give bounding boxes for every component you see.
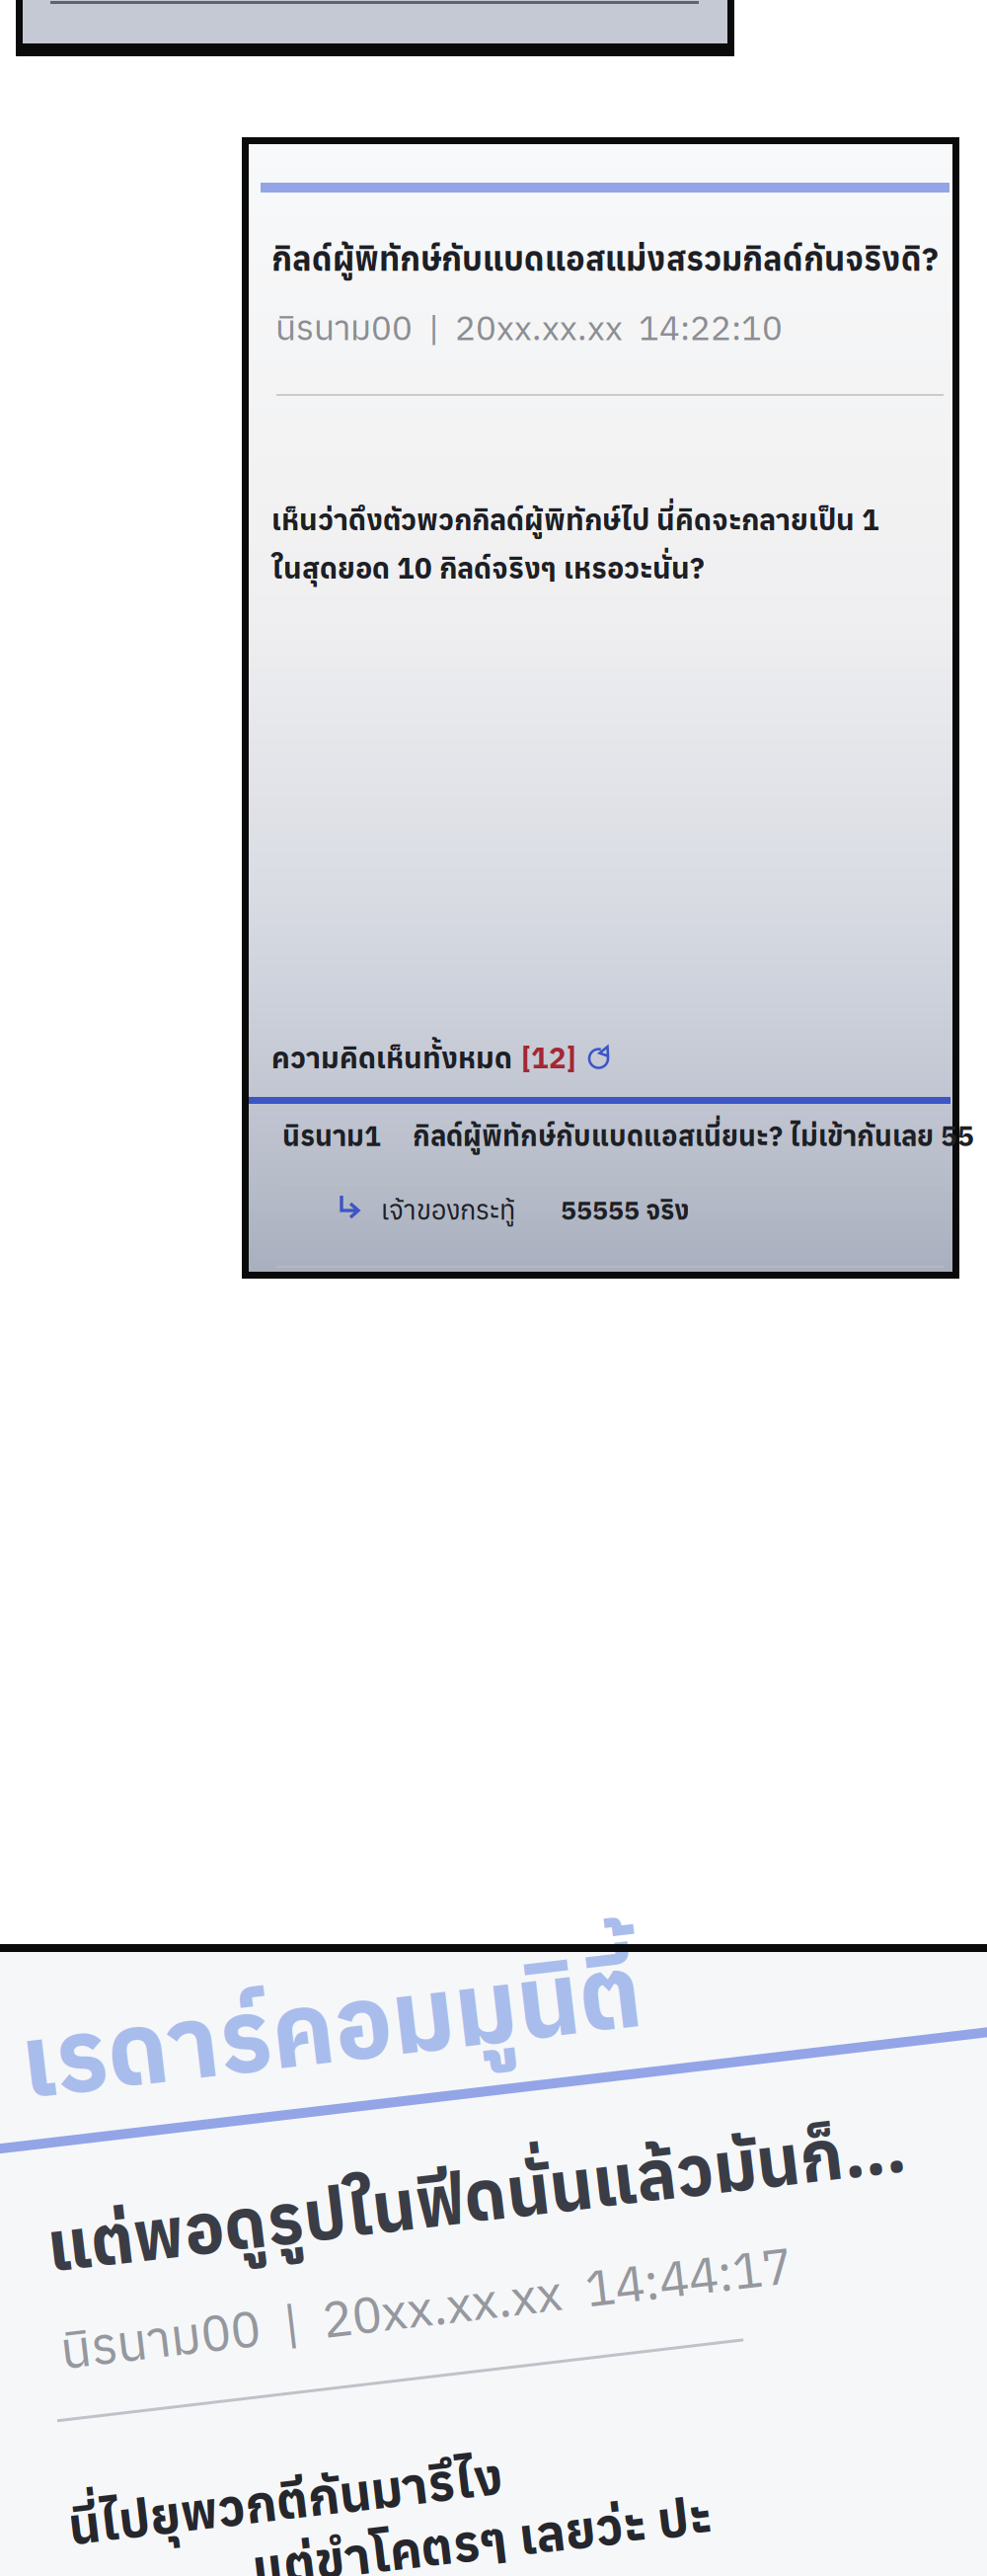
staticText: นี่ไปยุพวกตีกันมารึไง [5, 2498, 442, 2563]
staticText: กิลด์ผู้พิทักษ์กับแบดแอสเนี่ยนะ? ไม่เข้า… [413, 1118, 974, 1154]
staticText: ในสุดยอด 10 กิลด์จริงๆ เหรอวะนั่น? [271, 549, 705, 587]
staticText: นิรนาม00 | 20xx.xx.xx 14:22:10 [275, 305, 783, 350]
staticText: กิลด์ผู้พิทักษ์กับแบดแอสแม่งสรวมกิลด์กัน… [271, 237, 939, 280]
staticText: เจ้าของกระทู้ [381, 1193, 515, 1227]
staticText: เห็นว่าดึงตัวพวกกิลด์ผู้พิทักษ์ไป นี่คิด… [271, 501, 879, 538]
staticText: นิรนาม00 | 20xx.xx.xx 14:44:17 [18, 2322, 753, 2387]
staticText: ความคิดเห็นทั้งหมด [271, 1039, 512, 1076]
staticText: เรดาร์คอมมูนิตี้ [13, 1999, 636, 2128]
staticText: แต่พอดูรูปในฟีดนั่นแล้วมันก็... [17, 2206, 879, 2295]
staticText: นิรนาม1 [282, 1118, 381, 1154]
staticText: [12] [521, 1039, 576, 1076]
staticText: แต่ขำโคตรๆ เลยว่ะ ปะ [183, 2561, 645, 2576]
staticText: 55555 จริง [561, 1193, 690, 1227]
